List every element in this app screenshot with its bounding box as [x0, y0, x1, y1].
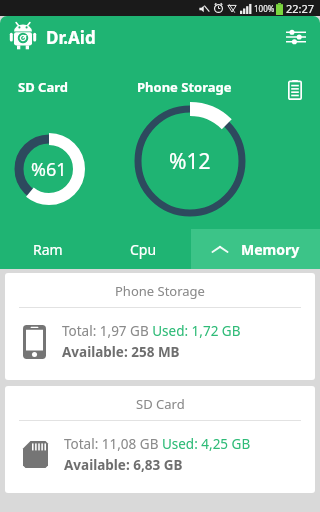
staticText: Total: 11,08 GB Used: 4,25 GB	[64, 435, 251, 453]
staticText: %12	[169, 147, 211, 176]
staticText: %61	[31, 157, 67, 182]
staticText: Ram	[33, 240, 63, 259]
staticText: Total: 1,97 GB Used: 1,72 GB	[62, 322, 241, 340]
button[interactable]: %12	[131, 102, 249, 220]
button[interactable]: Battery	[283, 78, 307, 102]
button[interactable]: Memory	[191, 229, 320, 269]
button[interactable]: Settings	[280, 21, 312, 53]
staticText: Cpu	[130, 240, 157, 259]
staticText: Memory	[241, 240, 300, 259]
staticText: Available: 6,83 GB	[64, 456, 183, 474]
button[interactable]: App icon	[8, 22, 38, 52]
button[interactable]: %61	[13, 133, 85, 205]
staticText: Dr.Aid	[46, 26, 96, 49]
staticText: 100%	[254, 3, 275, 14]
staticText: Phone Storage	[137, 78, 232, 96]
button[interactable]: Ram	[0, 229, 96, 269]
staticText: SD Card	[18, 78, 68, 96]
staticText: Available: 258 MB	[62, 343, 180, 361]
staticText: SD Card	[136, 395, 185, 413]
button[interactable]: Phone Storage	[5, 273, 315, 380]
staticText: Phone Storage	[115, 282, 205, 300]
button[interactable]: Cpu	[96, 229, 191, 269]
button[interactable]: SD Card	[5, 386, 315, 493]
staticText: 22:27	[286, 1, 315, 16]
